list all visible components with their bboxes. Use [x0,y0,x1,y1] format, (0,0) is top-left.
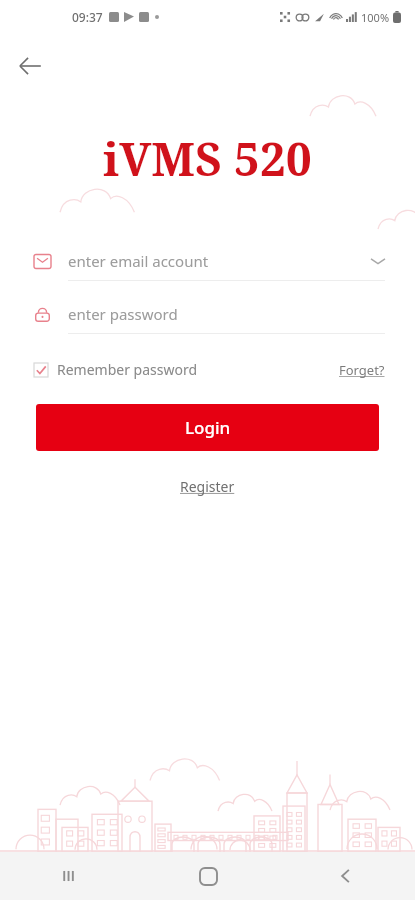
staticText: Register [180,477,235,496]
button[interactable]: Back [8,44,52,88]
staticText: enter password [68,304,178,324]
button[interactable]: Recent apps [0,852,139,900]
button[interactable]: Home [139,852,277,900]
button[interactable]: Back [277,852,415,900]
staticText: Remember password [57,360,198,379]
button[interactable]: Remember password [34,360,198,379]
staticText: 100% [361,10,390,25]
button[interactable]: Login [36,404,379,451]
button[interactable]: enter password [34,295,385,333]
button[interactable]: Register [174,471,241,502]
staticText: Login [185,416,231,439]
button[interactable]: enter email account [34,242,385,280]
staticText: enter email account [68,251,209,271]
button[interactable]: Forget? [339,361,385,379]
staticText: iVMS 520 [103,127,312,190]
staticText: 09:37 [72,9,103,25]
staticText: Forget? [339,361,385,379]
